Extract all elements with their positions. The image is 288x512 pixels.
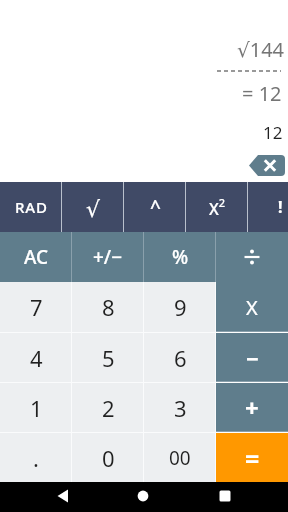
button[interactable]: 7 <box>0 282 72 332</box>
button[interactable]: 00 <box>144 433 216 482</box>
button[interactable]: 4 <box>0 333 72 382</box>
staticText: 1 <box>30 393 43 423</box>
staticText: X <box>246 294 258 321</box>
staticText: 12 <box>263 121 283 144</box>
button[interactable]: = <box>216 433 288 482</box>
staticText: 00 <box>169 445 191 471</box>
staticText: % <box>172 244 189 270</box>
button[interactable]: 1 <box>0 383 72 432</box>
button[interactable]: + <box>216 383 288 432</box>
staticText: + <box>245 391 259 424</box>
button[interactable]: ! <box>248 182 288 232</box>
staticText: 4 <box>30 343 43 373</box>
staticText: 8 <box>102 292 115 322</box>
staticText: = 12 <box>242 80 282 107</box>
button[interactable]: X2 <box>186 182 248 232</box>
staticText: 0 <box>102 443 115 473</box>
button[interactable]: RAD <box>0 182 62 232</box>
staticText: AC <box>24 244 49 270</box>
button[interactable] <box>219 490 231 502</box>
button[interactable]: 9 <box>144 282 216 332</box>
button[interactable]: 3 <box>144 383 216 432</box>
button[interactable]: 5 <box>72 333 144 382</box>
staticText: − <box>246 343 259 373</box>
staticText: 7 <box>30 292 43 322</box>
staticText: X2 <box>209 195 226 220</box>
button[interactable] <box>137 490 149 502</box>
staticText: 3 <box>174 393 187 423</box>
button[interactable]: AC <box>0 232 72 282</box>
staticText: 5 <box>102 343 115 373</box>
staticText: 9 <box>174 292 187 322</box>
staticText: 2 <box>102 393 115 423</box>
button[interactable]: +/− <box>72 232 144 282</box>
button[interactable]: − <box>216 333 288 382</box>
button[interactable]: √ <box>62 182 124 232</box>
button[interactable] <box>249 155 285 176</box>
staticText: 6 <box>174 343 187 373</box>
staticText: √144 <box>237 36 285 63</box>
button[interactable]: 2 <box>72 383 144 432</box>
staticText: RAD <box>15 197 48 217</box>
button[interactable]: 0 <box>72 433 144 482</box>
button[interactable]: % <box>144 232 216 282</box>
button[interactable] <box>216 232 288 282</box>
button[interactable]: 8 <box>72 282 144 332</box>
button[interactable]: 6 <box>144 333 216 382</box>
staticText: √ <box>86 197 101 223</box>
staticText: +/− <box>93 244 123 270</box>
button[interactable]: ^ <box>124 182 186 232</box>
staticText: = <box>245 441 260 475</box>
staticText: ! <box>278 196 283 218</box>
button[interactable]: X <box>216 282 288 332</box>
button[interactable] <box>56 489 70 503</box>
button[interactable]: . <box>0 433 72 482</box>
staticText: . <box>33 443 39 473</box>
staticText: ^ <box>150 194 161 220</box>
